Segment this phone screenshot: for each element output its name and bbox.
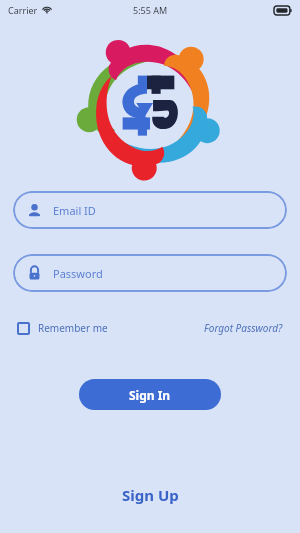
other: Email	[27, 203, 42, 218]
staticText: 5:55 AM	[133, 4, 168, 16]
button[interactable]: Sign Up	[100, 479, 201, 511]
staticText: Sign Up	[122, 485, 179, 505]
staticText: Sign In	[129, 387, 171, 403]
other: Password	[27, 266, 42, 281]
button[interactable]: Remember me	[15, 317, 110, 339]
button[interactable]: Password	[13, 254, 287, 292]
staticText: Password	[53, 266, 103, 281]
button[interactable]: Sign In	[79, 379, 221, 410]
button[interactable]: Forgot Password?	[202, 317, 285, 339]
staticText: Carrier	[8, 4, 38, 16]
staticText: Remember me	[38, 321, 108, 335]
staticText: Email ID	[53, 203, 96, 218]
button[interactable]: Email	[13, 191, 287, 229]
staticText: Forgot Password?	[204, 321, 283, 335]
